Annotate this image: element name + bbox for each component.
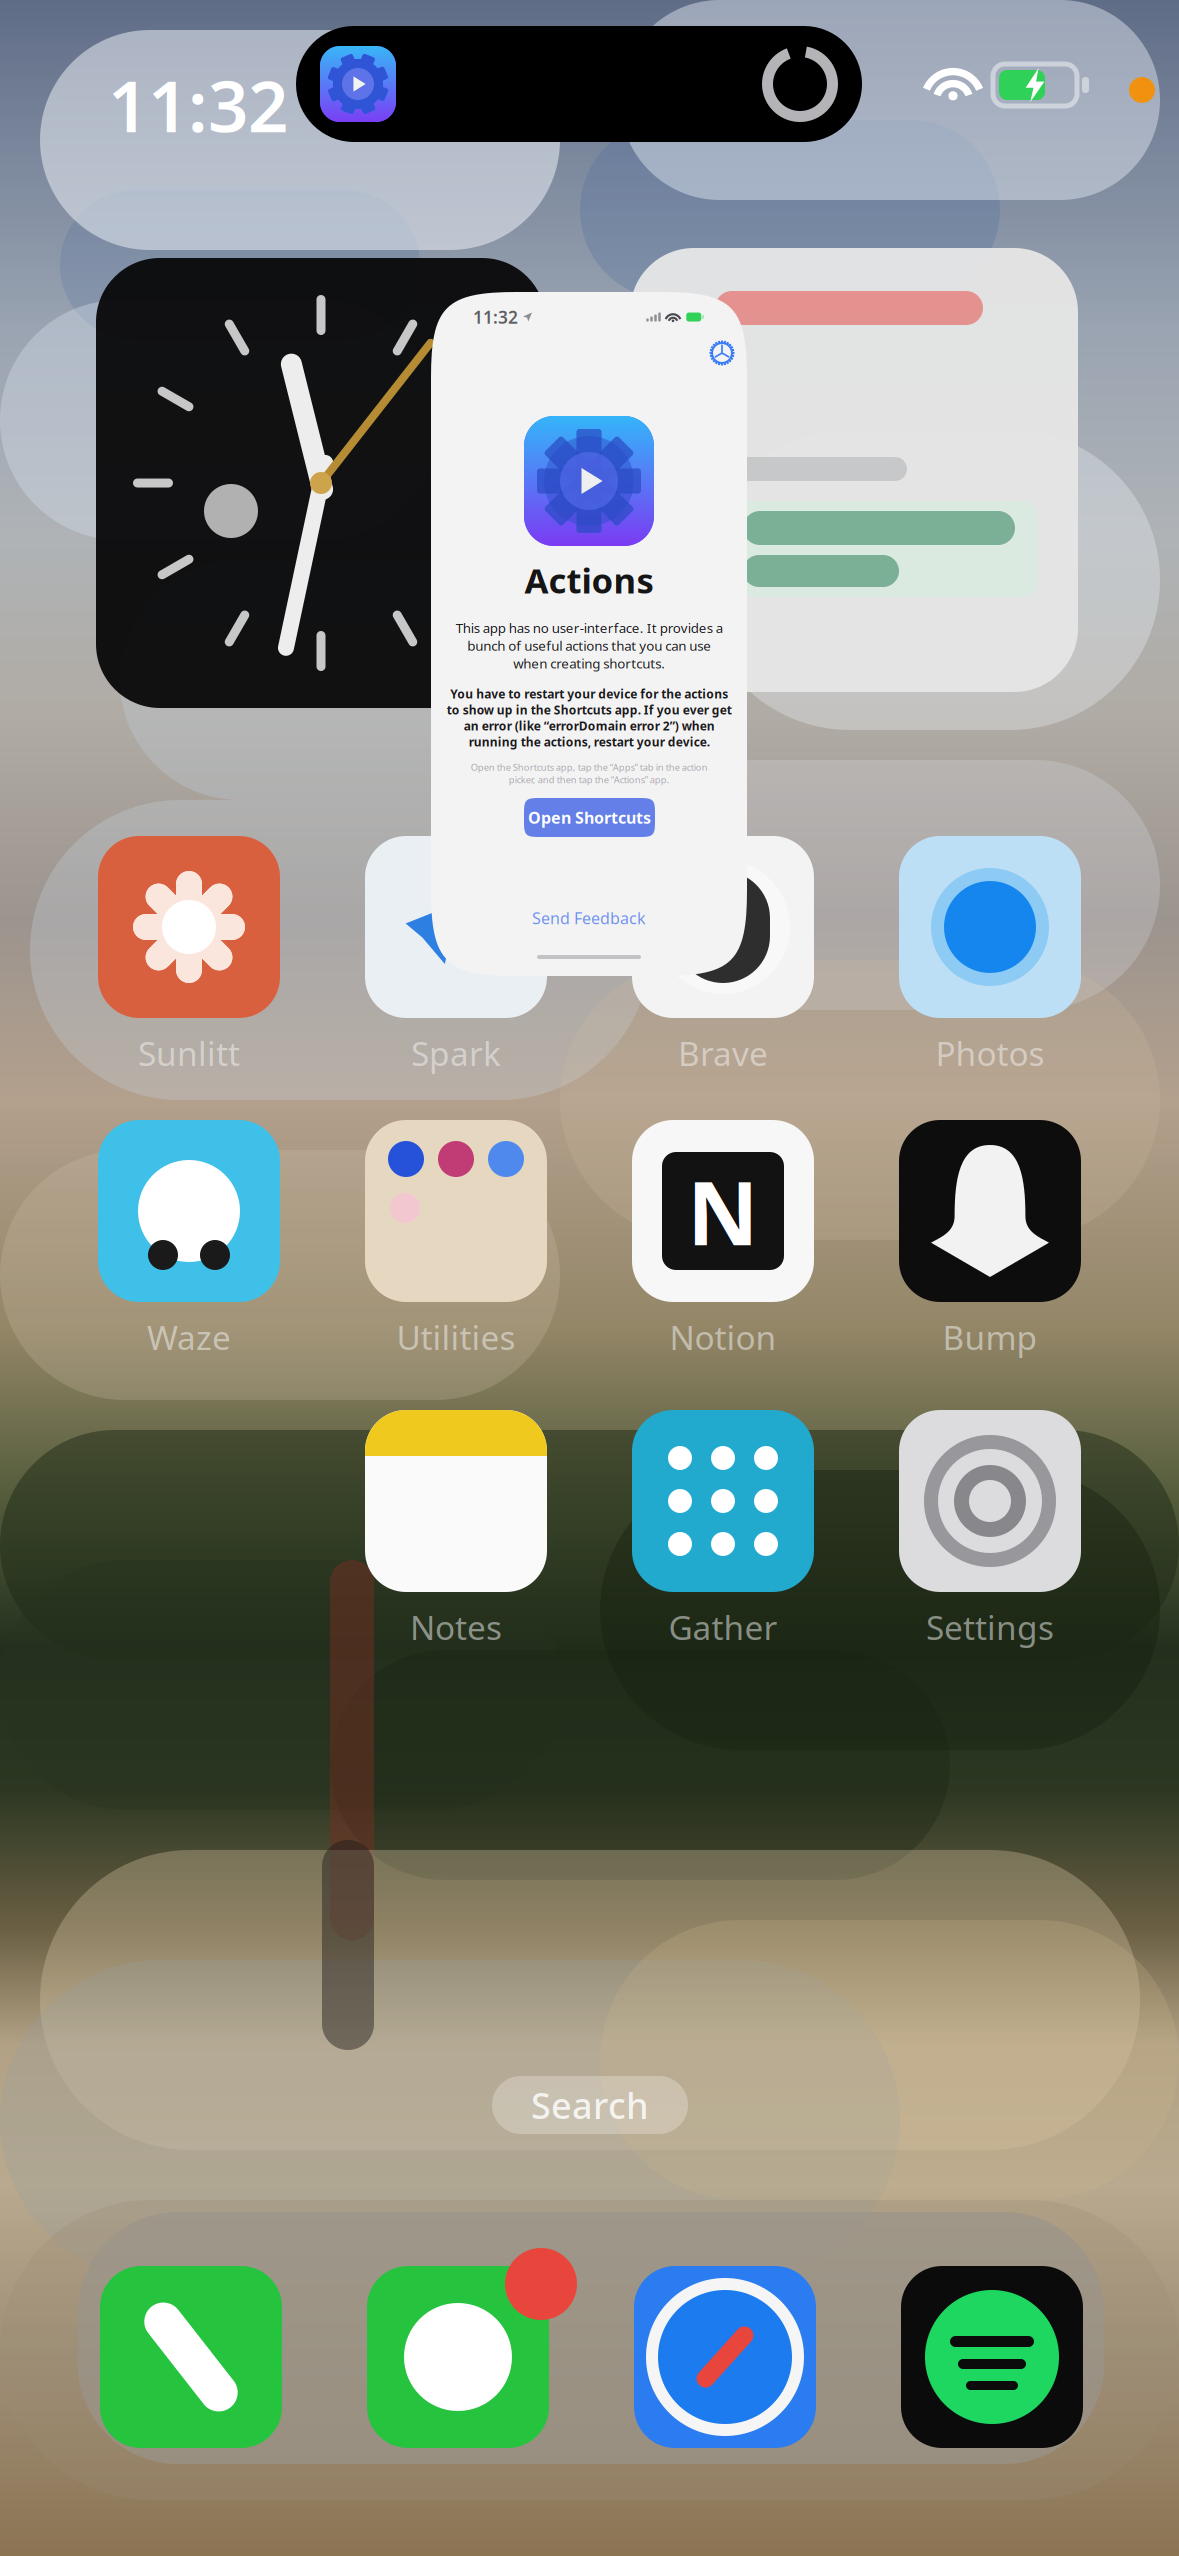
staticText: Search — [531, 2081, 649, 2129]
button[interactable]: N — [608, 1120, 838, 1359]
staticText: You have to restart your device for the … — [446, 686, 731, 750]
staticText: 11:32 — [473, 305, 518, 328]
staticText: This app has no user-interface. It provi… — [455, 619, 722, 672]
staticText: 11:32 — [108, 58, 288, 152]
staticText: Open the Shortcuts app, tap the “Apps” t… — [470, 761, 707, 786]
staticText: Waze — [147, 1315, 231, 1359]
button[interactable]: Search — [492, 2076, 688, 2134]
staticText: Notion — [669, 1315, 776, 1359]
button[interactable]: Open Shortcuts — [524, 798, 655, 837]
button[interactable]: Utilities — [341, 1120, 571, 1359]
staticText: Brave — [678, 1031, 768, 1075]
staticText: Send Feedback — [532, 907, 646, 929]
staticText: Notes — [410, 1605, 502, 1649]
staticText: Sunlitt — [138, 1031, 240, 1075]
button[interactable]: Bump — [875, 1120, 1105, 1359]
staticText: Open Shortcuts — [528, 807, 651, 828]
staticText: N — [687, 1153, 759, 1269]
button[interactable]: Settings — [709, 340, 735, 366]
staticText: Photos — [935, 1031, 1044, 1075]
button[interactable]: Notes — [341, 1410, 571, 1649]
button[interactable]: Phone — [100, 2266, 282, 2448]
button[interactable]: Sunlitt — [74, 836, 304, 1075]
staticText: Gather — [668, 1605, 777, 1649]
button[interactable]: Safari — [634, 2266, 816, 2448]
staticText: Settings — [926, 1605, 1054, 1649]
button[interactable]: Settings — [875, 1410, 1105, 1649]
button[interactable]: Send Feedback — [431, 908, 747, 928]
staticText: Bump — [942, 1315, 1037, 1359]
button[interactable]: Photos — [875, 836, 1105, 1075]
button[interactable]: Spark — [341, 836, 571, 1075]
button[interactable]: Spotify — [901, 2266, 1083, 2448]
button[interactable]: Messages — [367, 2266, 549, 2448]
staticText: Utilities — [396, 1315, 515, 1359]
button[interactable]: Gather — [608, 1410, 838, 1649]
button[interactable]: Brave — [608, 836, 838, 1075]
button[interactable]: Waze — [74, 1120, 304, 1359]
staticText: Spark — [411, 1031, 501, 1075]
staticText: Actions — [524, 557, 653, 603]
